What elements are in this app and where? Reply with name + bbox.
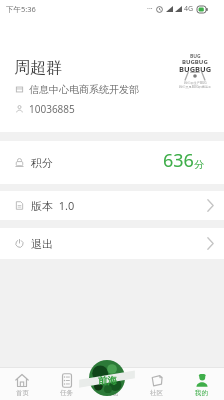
button[interactable]: 退出 — [0, 228, 224, 259]
button[interactable]: 版本 1.0 — [0, 191, 224, 220]
staticText: BUG — [190, 53, 201, 60]
staticText: 首页 — [16, 389, 29, 397]
staticText: 信息中心电商系统开发部 — [29, 83, 139, 96]
staticText: 我们不生产BUG — [184, 81, 207, 85]
staticText: 4G — [184, 4, 194, 14]
staticText: 退出 — [31, 237, 53, 251]
button[interactable]: 社区 — [134, 368, 179, 400]
staticText: 周超群 — [14, 58, 62, 78]
staticText: 分 — [194, 158, 204, 171]
staticText: 版本 1.0 — [31, 198, 75, 213]
staticText: 发现 — [105, 389, 118, 397]
staticText: 下午5:36 — [6, 4, 36, 14]
staticText: 前海 — [98, 375, 117, 387]
button[interactable]: 任务 — [44, 368, 89, 400]
staticText: 积分 — [31, 156, 53, 170]
button[interactable]: 首页 — [0, 368, 44, 400]
staticText: BUGBUG — [182, 58, 208, 66]
staticText: 社区 — [150, 389, 163, 397]
button[interactable]: 我的 — [179, 368, 224, 400]
staticText: 我们只是BUG的搬运工 — [179, 85, 212, 89]
button[interactable]: 积分 — [0, 141, 224, 184]
staticText: 636 — [163, 148, 194, 173]
staticText: BUGBUG — [179, 64, 212, 74]
staticText: 任务 — [60, 389, 73, 397]
staticText: ··· — [147, 4, 153, 14]
staticText: 我的 — [195, 389, 208, 397]
button[interactable]: 发现 — [89, 368, 134, 400]
staticText: 10036885 — [29, 102, 75, 116]
